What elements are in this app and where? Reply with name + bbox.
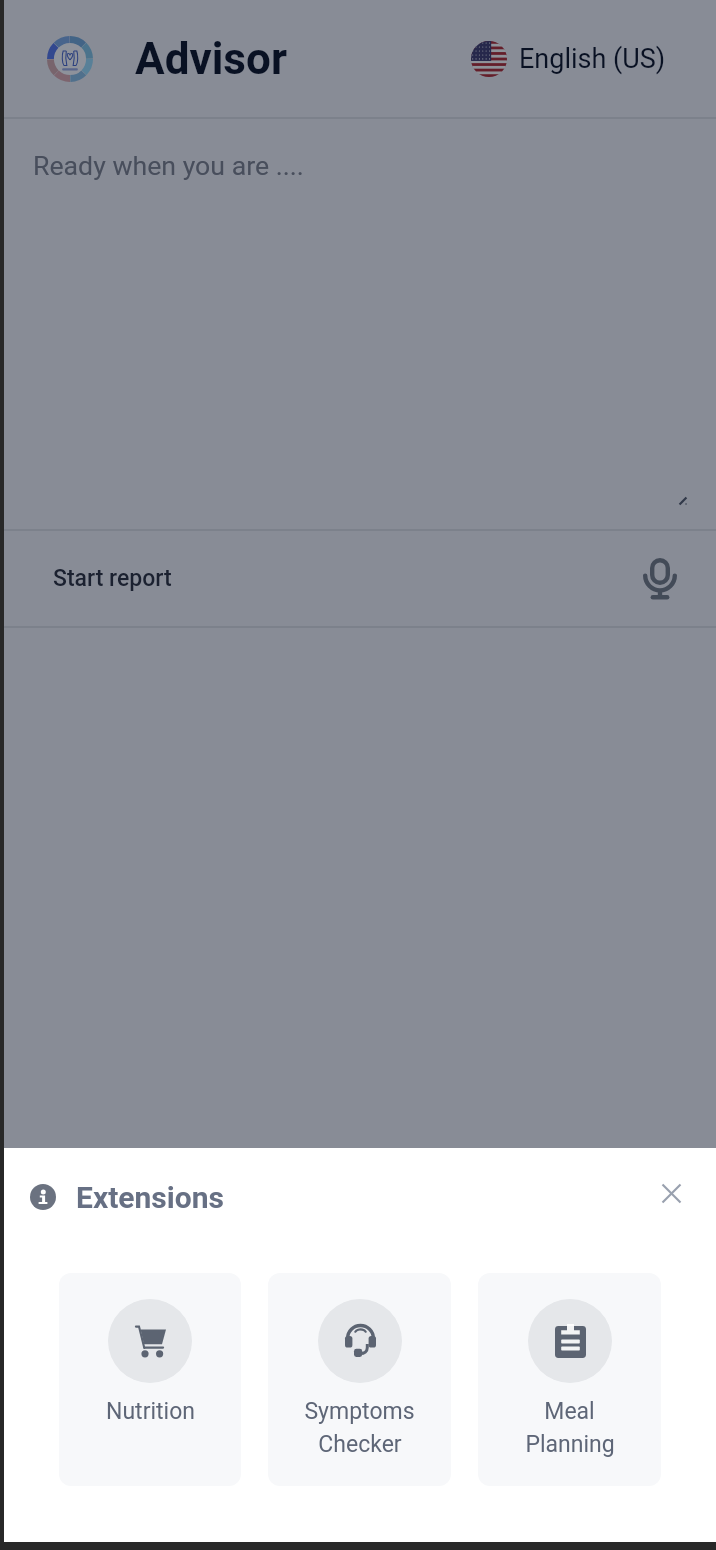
button[interactable]: Close xyxy=(645,1167,697,1219)
staticText: Checker xyxy=(318,1431,402,1458)
button[interactable]: Advisor xyxy=(47,33,287,85)
button[interactable]: Symptoms xyxy=(268,1273,451,1486)
staticText: Ready when you are .... xyxy=(33,150,304,181)
staticText: Symptoms xyxy=(304,1398,415,1425)
staticText: Meal xyxy=(544,1398,595,1425)
button[interactable]: Record voice xyxy=(632,551,688,607)
button[interactable]: English (US) xyxy=(471,43,666,75)
button[interactable]: Start report xyxy=(0,531,716,626)
staticText: Start report xyxy=(53,565,172,592)
staticText: Planning xyxy=(525,1431,615,1458)
staticText: Nutrition xyxy=(106,1398,195,1425)
staticText: Extensions xyxy=(76,1180,224,1215)
staticText: Advisor xyxy=(135,33,287,85)
button[interactable]: Nutrition xyxy=(59,1273,241,1486)
button[interactable]: Meal xyxy=(478,1273,661,1486)
staticText: English (US) xyxy=(519,43,666,75)
